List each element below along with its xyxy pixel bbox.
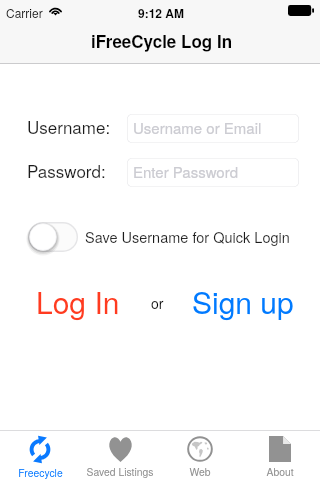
staticText: Web xyxy=(189,464,211,479)
button[interactable]: Sign up xyxy=(192,280,294,323)
staticText: or xyxy=(151,293,164,313)
staticText: Username: xyxy=(27,114,111,138)
staticText: Enter Password xyxy=(133,161,239,182)
staticText: Password: xyxy=(27,158,106,182)
staticText: Saved Listings xyxy=(86,464,154,479)
button[interactable]: Web xyxy=(160,431,240,480)
button[interactable]: Username or Email xyxy=(127,114,299,143)
staticText: Freecycle xyxy=(18,465,63,480)
staticText: About xyxy=(266,464,294,479)
staticText: Username or Email xyxy=(133,117,262,138)
staticText: Save Username for Quick Login xyxy=(85,226,290,247)
staticText: Carrier xyxy=(6,4,43,21)
button[interactable]: Log In xyxy=(36,280,120,323)
staticText: Sign up xyxy=(192,280,294,323)
button[interactable]: Enter Password xyxy=(127,158,299,187)
staticText: iFreeCycle Log In xyxy=(91,29,233,53)
button[interactable]: Save Username for Quick Login xyxy=(28,221,290,252)
button[interactable]: About xyxy=(240,431,320,480)
staticText: 9:12 AM xyxy=(138,4,185,21)
staticText: Log In xyxy=(36,280,120,323)
button[interactable]: Saved Listings xyxy=(80,431,160,480)
button[interactable]: Freecycle xyxy=(0,431,80,480)
